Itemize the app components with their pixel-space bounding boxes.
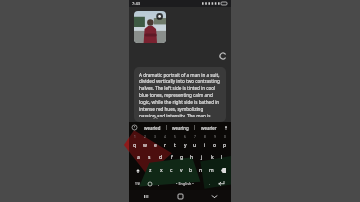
staticText: h xyxy=(190,154,194,161)
staticText: j xyxy=(201,154,203,161)
button[interactable]: d xyxy=(155,152,166,163)
button[interactable]: a xyxy=(133,152,144,163)
button[interactable]: o xyxy=(210,140,220,150)
staticText: d xyxy=(159,154,163,161)
staticText: 4 xyxy=(164,135,166,139)
button[interactable]: r xyxy=(160,140,170,150)
button[interactable]: z xyxy=(145,165,156,176)
staticText: 9 xyxy=(214,135,216,139)
staticText: b xyxy=(189,167,193,174)
button[interactable]: j xyxy=(197,152,207,163)
staticText: 7:43 xyxy=(132,1,140,6)
button[interactable]: q xyxy=(130,140,140,150)
button[interactable]: A dramatic portrait of a man in a suit, … xyxy=(134,67,226,122)
staticText: r xyxy=(164,142,167,149)
staticText: !?# xyxy=(135,181,140,186)
staticText: , xyxy=(158,181,160,186)
button[interactable]: s xyxy=(144,152,155,163)
staticText: f xyxy=(171,154,173,161)
button[interactable]: Shift xyxy=(130,165,145,176)
button[interactable]: • English • xyxy=(163,178,206,189)
staticText: • English • xyxy=(176,181,194,186)
staticText: 2 xyxy=(144,135,146,139)
staticText: 7 xyxy=(194,135,196,139)
staticText: c xyxy=(170,167,173,174)
button[interactable]: k xyxy=(207,152,217,163)
button[interactable]: b xyxy=(186,165,196,176)
button[interactable]: n xyxy=(196,165,206,176)
button[interactable]: Home xyxy=(163,190,197,202)
button[interactable]: f xyxy=(166,152,177,163)
button[interactable]: h xyxy=(187,152,197,163)
staticText: y xyxy=(184,142,187,149)
button[interactable]: u xyxy=(190,140,200,150)
staticText: x xyxy=(160,167,163,174)
staticText: 6 xyxy=(184,135,186,139)
staticText: 0 xyxy=(224,135,226,139)
button[interactable]: v xyxy=(176,165,186,176)
staticText: a xyxy=(137,154,140,161)
button[interactable]: !?# xyxy=(131,178,144,189)
button[interactable]: y xyxy=(180,140,190,150)
staticText: 5 xyxy=(174,135,176,139)
staticText: 8 xyxy=(204,135,206,139)
button[interactable]: Back xyxy=(197,190,231,202)
button[interactable]: t xyxy=(170,140,180,150)
staticText: g xyxy=(180,154,184,161)
button[interactable]: Backspace xyxy=(216,165,230,176)
button[interactable]: Keyboard settings xyxy=(131,124,138,131)
button[interactable]: g xyxy=(177,152,187,163)
button[interactable]: Voice typing xyxy=(222,124,229,131)
staticText: n xyxy=(199,167,203,174)
button[interactable]: wearier xyxy=(195,122,222,133)
staticText: wearied xyxy=(144,125,161,131)
button[interactable]: x xyxy=(156,165,166,176)
button[interactable]: w xyxy=(140,140,150,150)
staticText: 3 xyxy=(154,135,156,139)
staticText: k xyxy=(211,154,214,161)
staticText: wearier xyxy=(201,125,217,131)
staticText: . xyxy=(209,181,211,186)
button[interactable]: e xyxy=(150,140,160,150)
button[interactable]: , xyxy=(155,178,163,189)
staticText: 1 xyxy=(134,135,136,139)
staticText: m xyxy=(209,167,214,174)
staticText: q xyxy=(133,142,137,149)
staticText: z xyxy=(149,167,152,174)
button[interactable]: p xyxy=(220,140,230,150)
button[interactable]: i xyxy=(200,140,210,150)
staticText: w xyxy=(143,142,147,149)
button[interactable]: Regenerate xyxy=(220,53,226,59)
staticText: u xyxy=(193,142,197,149)
button[interactable]: Generated image xyxy=(134,11,166,43)
staticText: wearing xyxy=(172,125,189,131)
staticText: e xyxy=(154,142,157,149)
button[interactable]: Recents xyxy=(129,190,163,202)
button[interactable]: wearied xyxy=(138,122,166,133)
button[interactable]: wearing xyxy=(167,122,194,133)
button[interactable]: Emoji xyxy=(144,178,155,189)
staticText: l xyxy=(221,154,223,161)
staticText: o xyxy=(213,142,217,149)
staticText: i xyxy=(204,142,206,149)
button[interactable]: c xyxy=(166,165,176,176)
staticText: t xyxy=(174,142,176,149)
staticText: A dramatic portrait of a man in a suit, … xyxy=(139,72,221,117)
staticText: p xyxy=(223,142,227,149)
button[interactable]: Enter xyxy=(214,178,229,189)
button[interactable]: . xyxy=(206,178,214,189)
button[interactable]: m xyxy=(206,165,216,176)
button[interactable]: l xyxy=(217,152,227,163)
staticText: v xyxy=(180,167,183,174)
staticText: s xyxy=(148,154,151,161)
